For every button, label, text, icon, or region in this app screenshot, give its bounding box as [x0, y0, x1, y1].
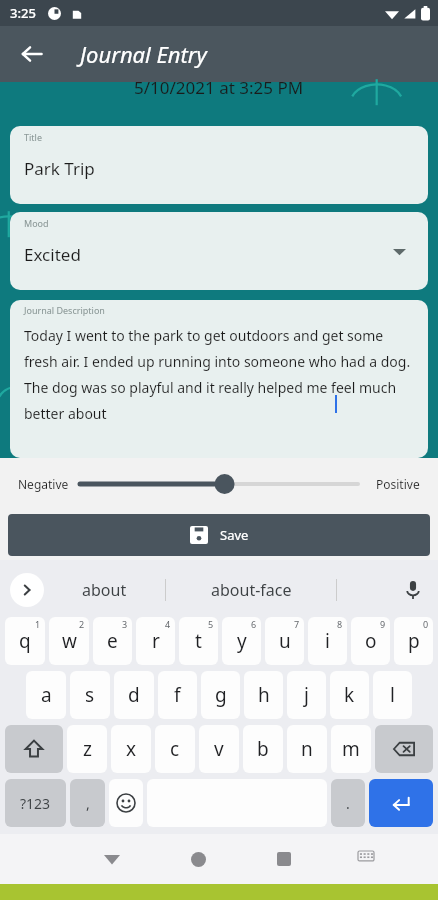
button[interactable]: Voice input	[398, 575, 428, 605]
staticText: m	[342, 736, 360, 762]
staticText: ?123	[20, 794, 51, 813]
staticText: ,	[86, 794, 90, 813]
button[interactable]: i	[308, 617, 347, 665]
button[interactable]: Back	[8, 30, 56, 78]
staticText: about-face	[211, 579, 292, 601]
staticText: j	[304, 682, 309, 708]
staticText: Park Trip	[24, 157, 95, 180]
staticText: 5	[208, 618, 214, 630]
button[interactable]: Title	[10, 126, 428, 204]
button[interactable]: Backspace	[375, 725, 433, 773]
staticText: s	[85, 682, 95, 708]
button[interactable]: l	[373, 671, 412, 719]
staticText: 9	[380, 618, 386, 630]
button[interactable]: Hide keyboard	[327, 834, 404, 884]
button[interactable]: Symbols	[5, 779, 66, 827]
staticText: t	[195, 628, 202, 654]
staticText: q	[19, 628, 31, 654]
staticText: i	[325, 628, 330, 654]
staticText: Journal Description	[24, 304, 105, 316]
staticText: g	[215, 682, 227, 708]
staticText: 4	[165, 618, 171, 630]
button[interactable]: More suggestions	[10, 573, 44, 607]
button[interactable]: s	[70, 671, 110, 719]
staticText: r	[152, 628, 160, 654]
staticText: Today I went to the park to get outdoors…	[24, 326, 414, 424]
button[interactable]: t	[179, 617, 218, 665]
button[interactable]: b	[243, 725, 283, 773]
button[interactable]: Back	[69, 834, 155, 884]
staticText: Save	[220, 526, 249, 544]
staticText: l	[390, 682, 395, 708]
staticText: k	[344, 682, 355, 708]
staticText: about	[82, 579, 127, 601]
staticText: 2	[79, 618, 85, 630]
staticText: .	[346, 794, 350, 813]
staticText: u	[279, 628, 291, 654]
staticText: f	[174, 682, 181, 708]
button[interactable]: n	[287, 725, 327, 773]
button[interactable]: Save	[8, 514, 430, 556]
button[interactable]: Shift	[5, 725, 63, 773]
staticText: Journal Entry	[80, 39, 207, 69]
staticText: 6	[251, 618, 257, 630]
button[interactable]: k	[330, 671, 369, 719]
staticText: c	[170, 736, 180, 762]
button[interactable]: g	[201, 671, 240, 719]
staticText: x	[126, 736, 137, 762]
button[interactable]: Enter	[369, 779, 433, 827]
button[interactable]: y	[222, 617, 261, 665]
staticText: n	[301, 736, 313, 762]
button[interactable]: Recents	[241, 834, 327, 884]
staticText: o	[365, 628, 377, 654]
button[interactable]: Journal Description	[10, 300, 428, 458]
button[interactable]: Home	[155, 834, 241, 884]
staticText: Positive	[376, 476, 420, 492]
staticText: 0	[423, 618, 429, 630]
button[interactable]: m	[331, 725, 371, 773]
button[interactable]: Comma	[70, 779, 105, 827]
staticText: h	[258, 682, 270, 708]
staticText: w	[62, 628, 77, 654]
staticText: Negative	[18, 476, 69, 492]
button[interactable]: Emoji	[109, 779, 143, 827]
button[interactable]: q	[5, 617, 45, 665]
button[interactable]: c	[155, 725, 195, 773]
staticText: v	[214, 736, 224, 762]
button[interactable]: Period	[331, 779, 365, 827]
button[interactable]: w	[49, 617, 89, 665]
button[interactable]: f	[158, 671, 197, 719]
button[interactable]: r	[136, 617, 175, 665]
button[interactable]: about-face	[166, 566, 336, 614]
button[interactable]: d	[114, 671, 154, 719]
button[interactable]: a	[26, 671, 66, 719]
staticText: Title	[24, 131, 42, 143]
staticText: y	[237, 628, 247, 654]
staticText: 5/10/2021 at 3:25 PM	[134, 76, 304, 99]
staticText: a	[41, 682, 52, 708]
button[interactable]: x	[111, 725, 151, 773]
staticText: 3:25	[10, 4, 36, 22]
staticText: 1	[35, 618, 41, 630]
staticText: 7	[294, 618, 300, 630]
button[interactable]: Mood	[10, 212, 428, 290]
button[interactable]: z	[67, 725, 107, 773]
button[interactable]: o	[351, 617, 390, 665]
staticText: d	[128, 682, 140, 708]
staticText: Excited	[24, 243, 81, 266]
staticText: p	[408, 628, 420, 654]
button[interactable]: h	[244, 671, 283, 719]
button[interactable]: j	[287, 671, 326, 719]
staticText: b	[257, 736, 269, 762]
staticText: z	[83, 736, 92, 762]
button[interactable]: about	[44, 566, 165, 614]
staticText: 8	[337, 618, 343, 630]
button[interactable]: e	[93, 617, 132, 665]
staticText: Mood	[24, 217, 49, 229]
button[interactable]: p	[394, 617, 433, 665]
button[interactable]	[80, 467, 358, 501]
button[interactable]: u	[265, 617, 304, 665]
button[interactable]: v	[199, 725, 239, 773]
staticText: e	[107, 628, 118, 654]
